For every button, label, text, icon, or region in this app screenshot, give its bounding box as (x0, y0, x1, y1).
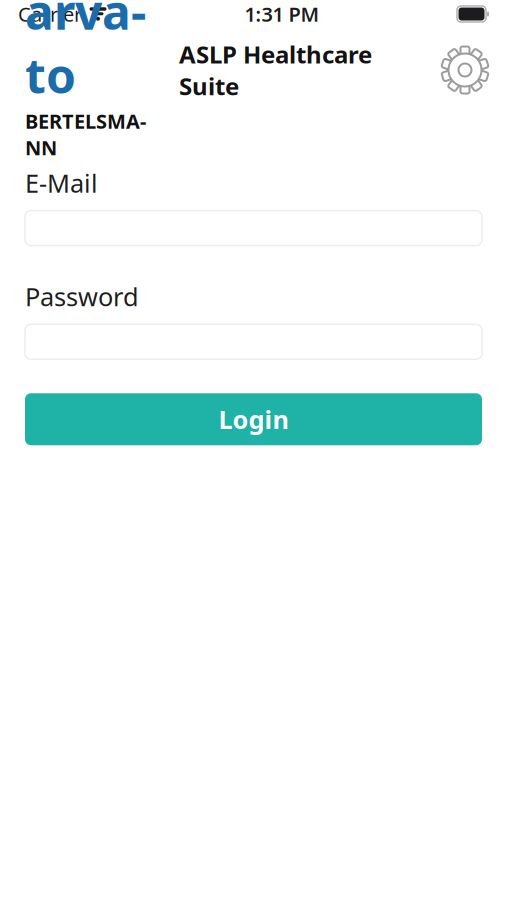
staticText: ASLP Healthcare Suite (179, 38, 372, 102)
button[interactable]: Login (25, 393, 482, 445)
staticText: Carrier (18, 1, 82, 27)
staticText: arvato (25, 0, 146, 107)
staticText: E-Mail (25, 166, 98, 200)
staticText: Password (25, 280, 139, 313)
staticText: 1:31 PM (244, 1, 319, 27)
button[interactable]: Settings (437, 42, 493, 98)
staticText: Login (218, 402, 288, 436)
staticText: BERTELSMANN (25, 108, 146, 161)
